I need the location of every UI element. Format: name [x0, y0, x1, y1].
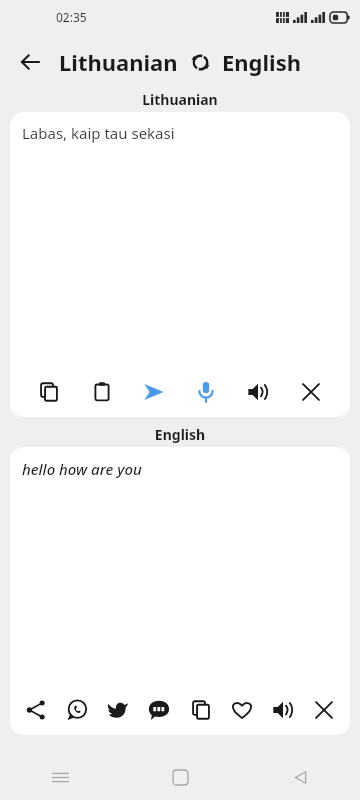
button[interactable]: Recent apps [0, 754, 120, 800]
button[interactable]: Favourite [223, 691, 261, 729]
button[interactable]: Home [120, 754, 240, 800]
button[interactable]: Clear [305, 691, 343, 729]
staticText: English [222, 47, 302, 77]
staticText: Lithuanian [59, 47, 178, 77]
button[interactable]: Back [240, 754, 360, 800]
button[interactable]: Speak [187, 373, 225, 411]
button[interactable]: English [222, 47, 302, 77]
button[interactable]: Labas, kaip tau sekasi [10, 112, 350, 367]
button[interactable]: Share [17, 691, 55, 729]
staticText: English [0, 425, 360, 444]
button[interactable]: Clear [292, 373, 330, 411]
button[interactable]: Back [8, 40, 52, 84]
button[interactable]: Translate [135, 373, 173, 411]
button[interactable]: Listen [264, 691, 302, 729]
button[interactable]: Copy [30, 373, 68, 411]
button[interactable]: WhatsApp [58, 691, 96, 729]
button[interactable]: Copy [182, 691, 220, 729]
button[interactable]: Listen [239, 373, 277, 411]
button[interactable]: hello how are you [10, 447, 350, 685]
button[interactable]: Twitter [99, 691, 137, 729]
staticText: hello how are you [22, 459, 142, 479]
staticText: 02:35 [56, 9, 87, 25]
button[interactable]: Swap languages [185, 47, 215, 77]
button[interactable]: Lithuanian [59, 47, 178, 77]
button[interactable]: SMS [140, 691, 178, 729]
staticText: Lithuanian [0, 90, 360, 109]
staticText: Labas, kaip tau sekasi [22, 123, 175, 143]
button[interactable]: Paste [83, 373, 121, 411]
